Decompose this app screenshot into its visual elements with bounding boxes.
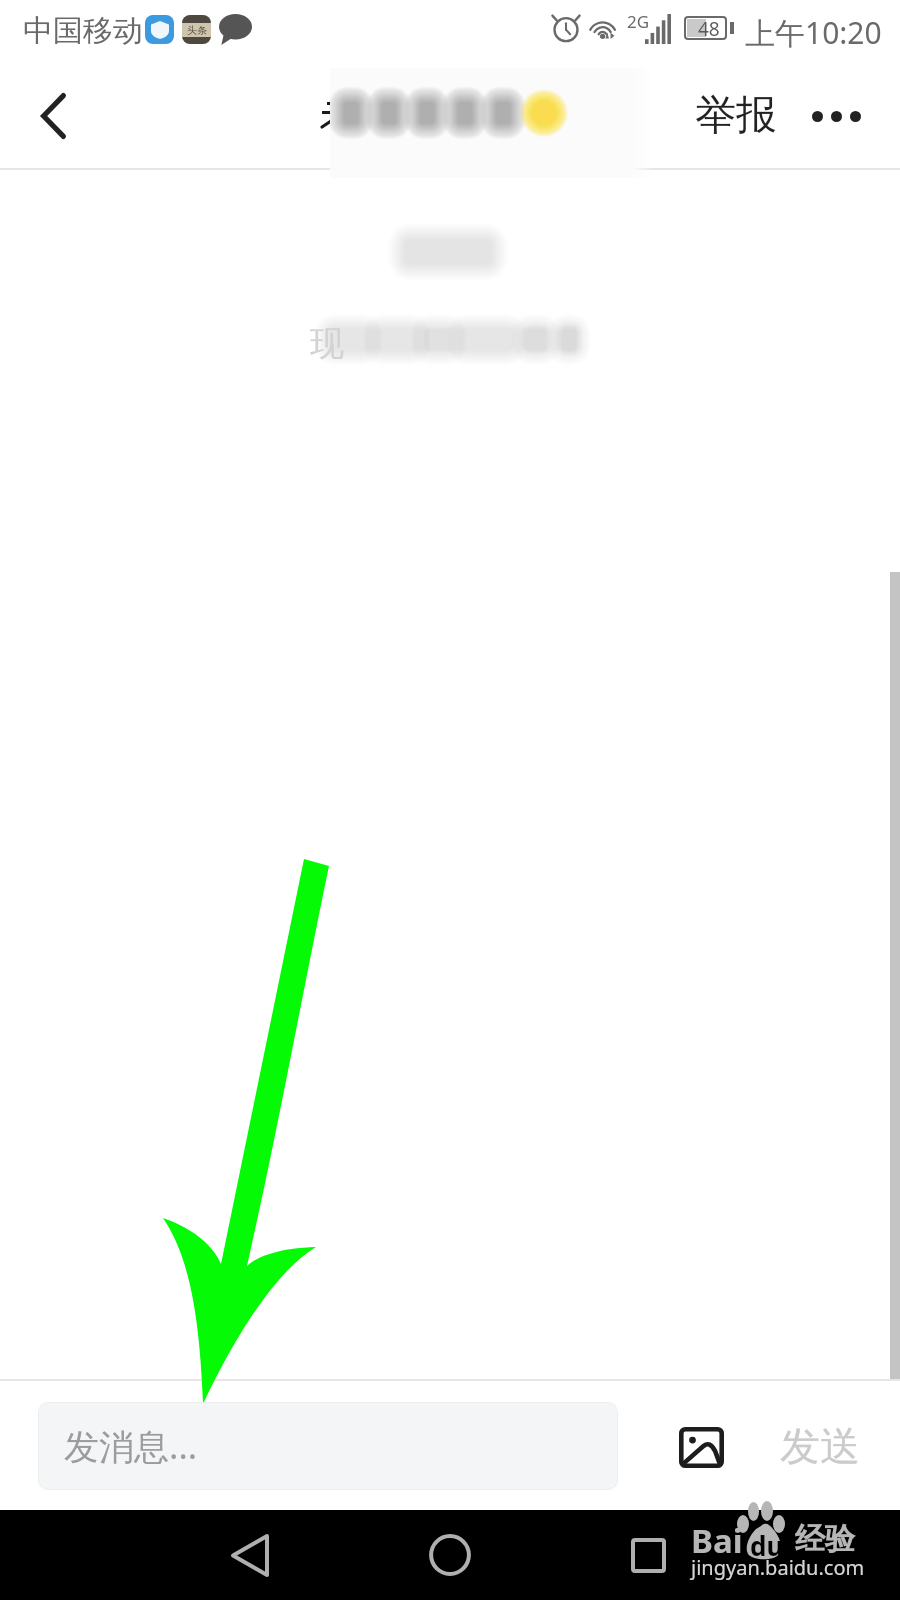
staticText: 头条	[187, 24, 207, 37]
button[interactable]: Pick image	[657, 1403, 745, 1491]
button[interactable]: 发送	[760, 1402, 880, 1490]
button[interactable]: 举报	[680, 62, 792, 170]
staticText: 举报	[695, 90, 777, 142]
staticText: jingyan.baidu.com	[691, 1554, 865, 1581]
staticText: 中国移动	[23, 12, 143, 50]
staticText: 现	[310, 322, 344, 365]
staticText: 2G	[627, 10, 650, 33]
button[interactable]: Home	[390, 1510, 510, 1600]
staticText: 发消息...	[64, 1422, 198, 1470]
button[interactable]: Back	[190, 1510, 310, 1600]
button[interactable]: Recent apps	[588, 1510, 708, 1600]
button[interactable]: 发消息...	[38, 1402, 618, 1490]
staticText: 发送	[780, 1421, 860, 1471]
button[interactable]: More options	[788, 62, 884, 170]
staticText: du	[750, 1528, 784, 1563]
staticText: Bai	[691, 1518, 743, 1563]
staticText: 上午10:20	[745, 12, 882, 53]
staticText: 经验	[795, 1520, 855, 1558]
button[interactable]: Back	[0, 62, 108, 170]
staticText: 48	[698, 16, 720, 40]
